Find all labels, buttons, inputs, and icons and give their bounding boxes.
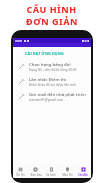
button[interactable]: Lần nhắc Điểm thi	[13, 74, 91, 89]
button[interactable]: Gửi mail đến nhà phát triển	[13, 89, 91, 104]
staticText: Ôn Thi	[16, 173, 25, 177]
button[interactable]: Biển báo	[28, 166, 43, 178]
button[interactable]: Cài đặt	[75, 166, 91, 178]
staticText: Hạng B2 - cần thi thi từng 20:30	[29, 68, 77, 72]
button[interactable]: Chọn hạng bằng đổi	[13, 59, 91, 74]
staticText: Mẹo Thi	[62, 173, 73, 177]
staticText: Cài đặt	[78, 173, 88, 177]
staticText: Chọn hạng bằng đổi	[29, 61, 71, 67]
staticText: Sa hình	[46, 173, 56, 177]
button[interactable]: Sa hình	[43, 166, 59, 178]
staticText: CẤU HÌNH	[26, 3, 77, 15]
staticText: Biển báo	[30, 173, 42, 177]
staticText: Lần nhắc Điểm thi	[29, 76, 67, 82]
staticText: ĐƠN GIẢN	[26, 15, 78, 27]
button[interactable]: Ôn Thi	[13, 166, 28, 178]
staticText: vietnam91@gmail.com	[29, 98, 64, 102]
button[interactable]: Mẹo Thi	[59, 166, 75, 178]
staticText: CÀI ĐẶT ỨNG DỤNG	[25, 51, 64, 56]
staticText: Điểm khóa để xin được lần mới	[29, 83, 76, 87]
staticText: Gửi mail đến nhà phát triển	[29, 91, 86, 97]
